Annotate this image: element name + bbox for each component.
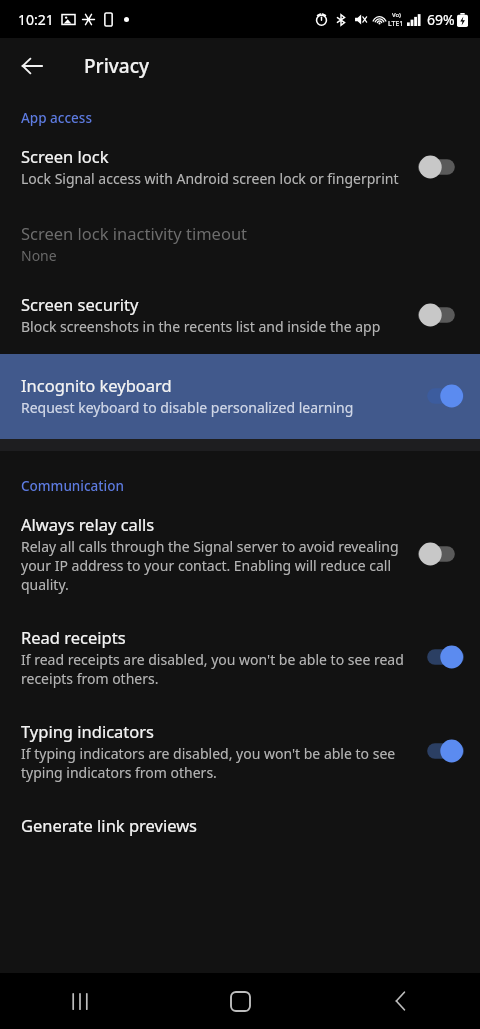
button[interactable]: Typing indicators xyxy=(0,710,480,804)
staticText: Typing indicators xyxy=(21,720,154,742)
staticText: If typing indicators are disabled, you w… xyxy=(21,744,404,782)
button[interactable]: Back xyxy=(9,43,55,89)
button[interactable]: Toggle off xyxy=(418,539,464,569)
button[interactable]: Toggle off xyxy=(418,152,464,182)
button[interactable]: Home xyxy=(160,973,320,1029)
button[interactable]: Toggle off xyxy=(418,300,464,330)
staticText: Communication xyxy=(21,477,124,495)
button[interactable]: Read receipts xyxy=(0,616,480,710)
button[interactable]: Screen security xyxy=(0,283,480,354)
staticText: Screen lock inactivity timeout xyxy=(21,222,248,244)
staticText: 10:21 xyxy=(18,10,54,29)
staticText: Read receipts xyxy=(21,626,126,648)
staticText: Lock Signal access with Android screen l… xyxy=(21,169,399,188)
staticText: Incognito keyboard xyxy=(21,374,172,396)
staticText: Always relay calls xyxy=(21,513,155,535)
staticText: Screen security xyxy=(21,293,139,315)
staticText: LTE1 xyxy=(388,19,404,29)
staticText: None xyxy=(21,246,57,265)
staticText: Screen lock xyxy=(21,145,109,167)
button[interactable]: Incognito keyboard xyxy=(0,354,480,439)
button[interactable]: Toggle on xyxy=(418,381,464,411)
staticText: Block screenshots in the recents list an… xyxy=(21,317,381,336)
button[interactable]: Toggle on xyxy=(418,642,464,672)
staticText: 69% xyxy=(427,10,455,29)
staticText: Relay all calls through the Signal serve… xyxy=(21,537,404,594)
staticText: Request keyboard to disable personalized… xyxy=(21,398,354,417)
button[interactable]: Recent apps xyxy=(0,973,160,1029)
button[interactable]: Generate link previews xyxy=(0,804,480,836)
staticText: If read receipts are disabled, you won't… xyxy=(21,650,404,688)
staticText: Vo) xyxy=(392,11,401,19)
button[interactable]: Screen lock inactivity timeout xyxy=(0,208,480,283)
button[interactable]: Toggle on xyxy=(418,736,464,766)
button[interactable]: Always relay calls xyxy=(0,497,480,616)
button[interactable]: Back xyxy=(320,973,480,1029)
staticText: Generate link previews xyxy=(21,814,198,836)
button[interactable]: Screen lock xyxy=(0,129,480,208)
staticText: App access xyxy=(21,109,92,127)
staticText: Privacy xyxy=(84,53,149,79)
